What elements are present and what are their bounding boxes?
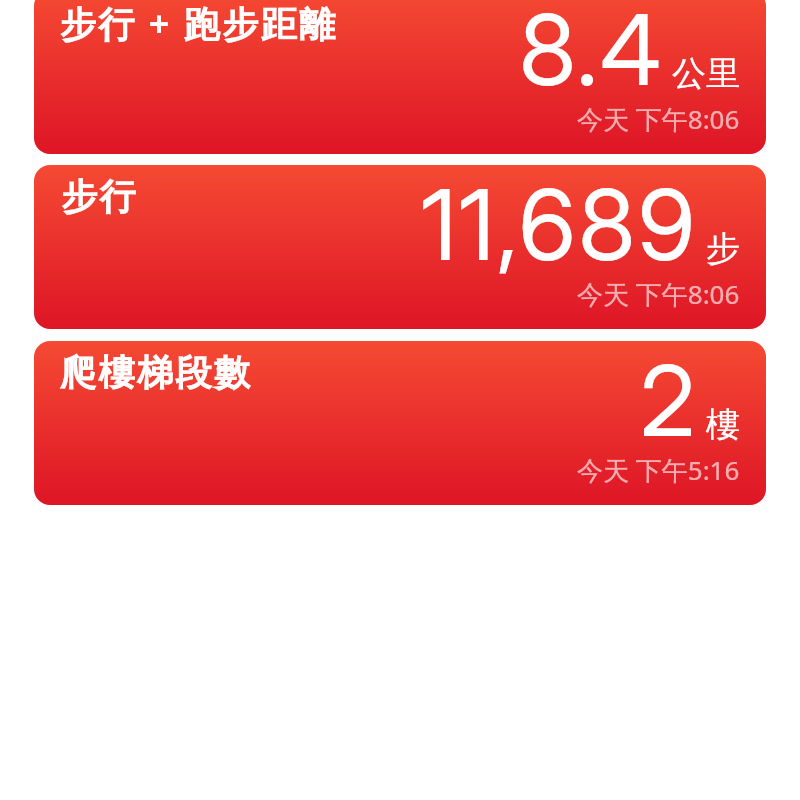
staticText: 今天 下午5:16 bbox=[577, 452, 740, 488]
staticText: 今天 下午8:06 bbox=[577, 276, 740, 312]
staticText: 11,689 bbox=[421, 165, 698, 284]
staticText: 今天 下午8:06 bbox=[577, 101, 740, 137]
button[interactable]: 步行 + 跑步距離 bbox=[34, 0, 766, 154]
staticText: 步行 + 跑步距離 bbox=[60, 0, 338, 48]
staticText: 8.4 bbox=[519, 0, 664, 109]
staticText: 步 bbox=[706, 227, 740, 270]
staticText: 樓 bbox=[706, 403, 740, 446]
staticText: 步行 bbox=[60, 174, 137, 219]
button[interactable]: 爬樓梯段數 bbox=[34, 341, 766, 505]
staticText: 公里 bbox=[672, 52, 740, 95]
staticText: 2 bbox=[640, 341, 698, 460]
staticText: 爬樓梯段數 bbox=[60, 350, 253, 395]
button[interactable]: 步行 bbox=[34, 165, 766, 329]
